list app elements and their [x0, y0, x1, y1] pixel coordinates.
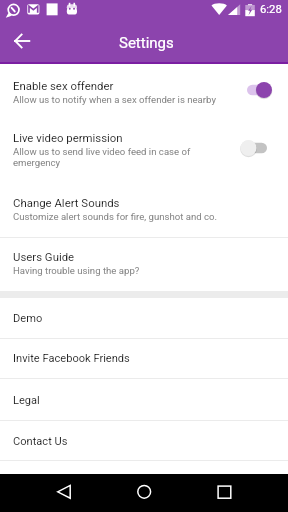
button[interactable]: Users Guide	[0, 238, 288, 289]
staticText: Demo	[13, 312, 43, 325]
staticText: Live video permission	[13, 131, 123, 144]
button[interactable]: Change Alert Sounds	[0, 184, 288, 235]
button[interactable]: Demo	[0, 299, 288, 338]
staticText: Having trouble using the app?	[13, 265, 140, 276]
button[interactable]: Live video permission	[0, 119, 288, 184]
button[interactable]: Home	[128, 480, 160, 506]
button[interactable]: Invite Facebook Friends	[0, 339, 288, 378]
staticText: Enable sex offender	[13, 79, 114, 92]
staticText: Allow us to send live video feed in case…	[13, 146, 191, 168]
button[interactable]: Back	[4, 26, 40, 62]
button[interactable]: Toggle off	[246, 137, 278, 159]
button[interactable]: Contact Us	[0, 422, 288, 461]
staticText: Allow us to notify when a sex offender i…	[13, 94, 216, 105]
staticText: Customize alert sounds for fire, gunshot…	[13, 211, 218, 222]
button[interactable]: Toggle on	[246, 79, 278, 101]
button[interactable]: Back	[48, 480, 80, 506]
staticText: Contact Us	[13, 435, 68, 448]
staticText: Legal	[13, 394, 40, 407]
button[interactable]: Enable sex offender	[0, 67, 288, 121]
staticText: Change Alert Sounds	[13, 196, 120, 209]
staticText: Settings	[119, 34, 174, 52]
staticText: Users Guide	[13, 250, 75, 263]
staticText: 6:28	[260, 3, 282, 16]
button[interactable]: Legal	[0, 379, 288, 421]
button[interactable]: Recent apps	[208, 480, 240, 506]
staticText: Invite Facebook Friends	[13, 352, 130, 365]
